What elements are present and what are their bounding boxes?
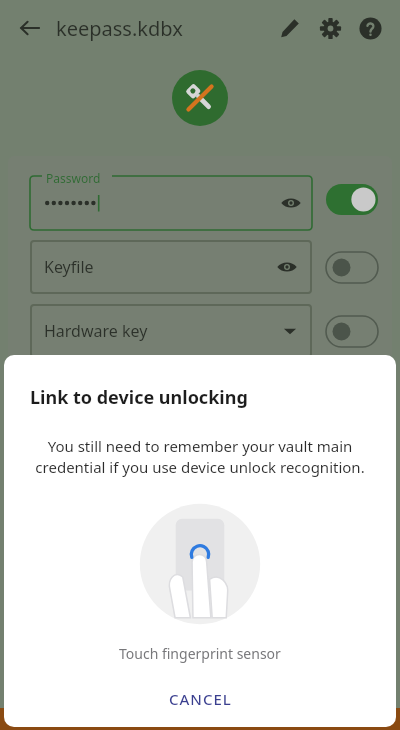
button[interactable]: Back <box>10 8 50 48</box>
staticText: Hardware key <box>44 320 148 342</box>
button[interactable]: Hardware key <box>30 304 312 358</box>
button[interactable]: CANCEL <box>153 683 248 715</box>
staticText: keepass.kdbx <box>56 15 270 42</box>
button[interactable]: Disabled <box>326 316 378 347</box>
button[interactable]: Enabled <box>326 184 378 215</box>
staticText: You still need to remember your vault ma… <box>26 436 374 478</box>
button[interactable]: Disabled <box>326 252 378 283</box>
button[interactable]: Help <box>350 8 390 48</box>
button[interactable]: Keyfile <box>30 240 312 294</box>
staticText: Password <box>46 170 101 186</box>
button[interactable]: Edit <box>270 8 310 48</box>
staticText: CANCEL <box>169 689 232 709</box>
button[interactable]: Settings <box>310 8 350 48</box>
button[interactable]: Password <box>30 168 312 230</box>
staticText: Touch fingerprint sensor <box>119 644 281 663</box>
staticText: Keyfile <box>44 256 94 278</box>
staticText: Link to device unlocking <box>30 385 248 410</box>
